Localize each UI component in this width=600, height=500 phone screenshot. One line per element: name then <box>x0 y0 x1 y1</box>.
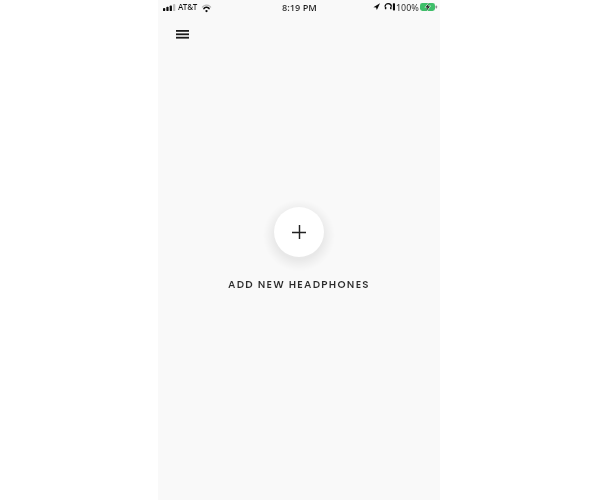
staticText: ADD NEW HEADPHONES <box>228 277 370 291</box>
button[interactable]: Add new headphones <box>274 207 324 257</box>
button[interactable]: Menu <box>171 23 193 45</box>
staticText: 100% <box>396 1 419 13</box>
button[interactable]: ADD NEW HEADPHONES <box>222 275 376 293</box>
staticText: 8:19 PM <box>282 1 317 14</box>
staticText: AT&T <box>178 1 198 12</box>
